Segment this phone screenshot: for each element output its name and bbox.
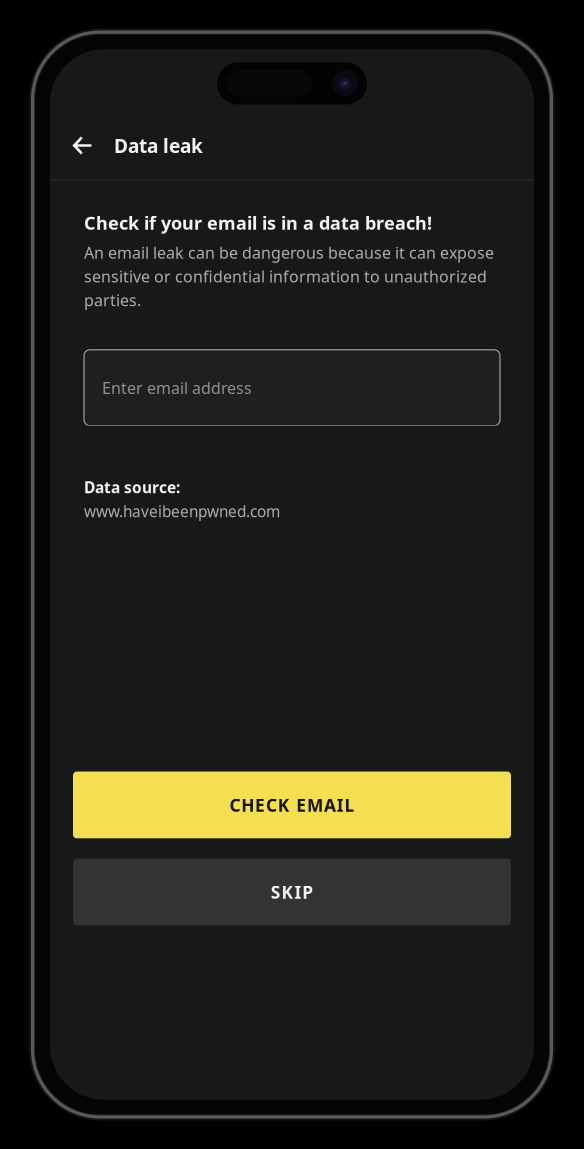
button[interactable]: SKIP [73,858,511,925]
staticText: Data source: [84,477,180,498]
staticText: Enter email address [102,377,252,398]
staticText: CHECK EMAIL [229,793,354,816]
staticText: Data leak [114,132,203,158]
staticText: www.haveibeenpwned.com [84,501,280,522]
button[interactable]: CHECK EMAIL [73,771,511,838]
staticText: An email leak can be dangerous because i… [84,242,494,311]
staticText: Check if your email is in a data breach! [84,210,432,235]
staticText: SKIP [271,880,313,903]
button[interactable]: Back [50,119,114,171]
